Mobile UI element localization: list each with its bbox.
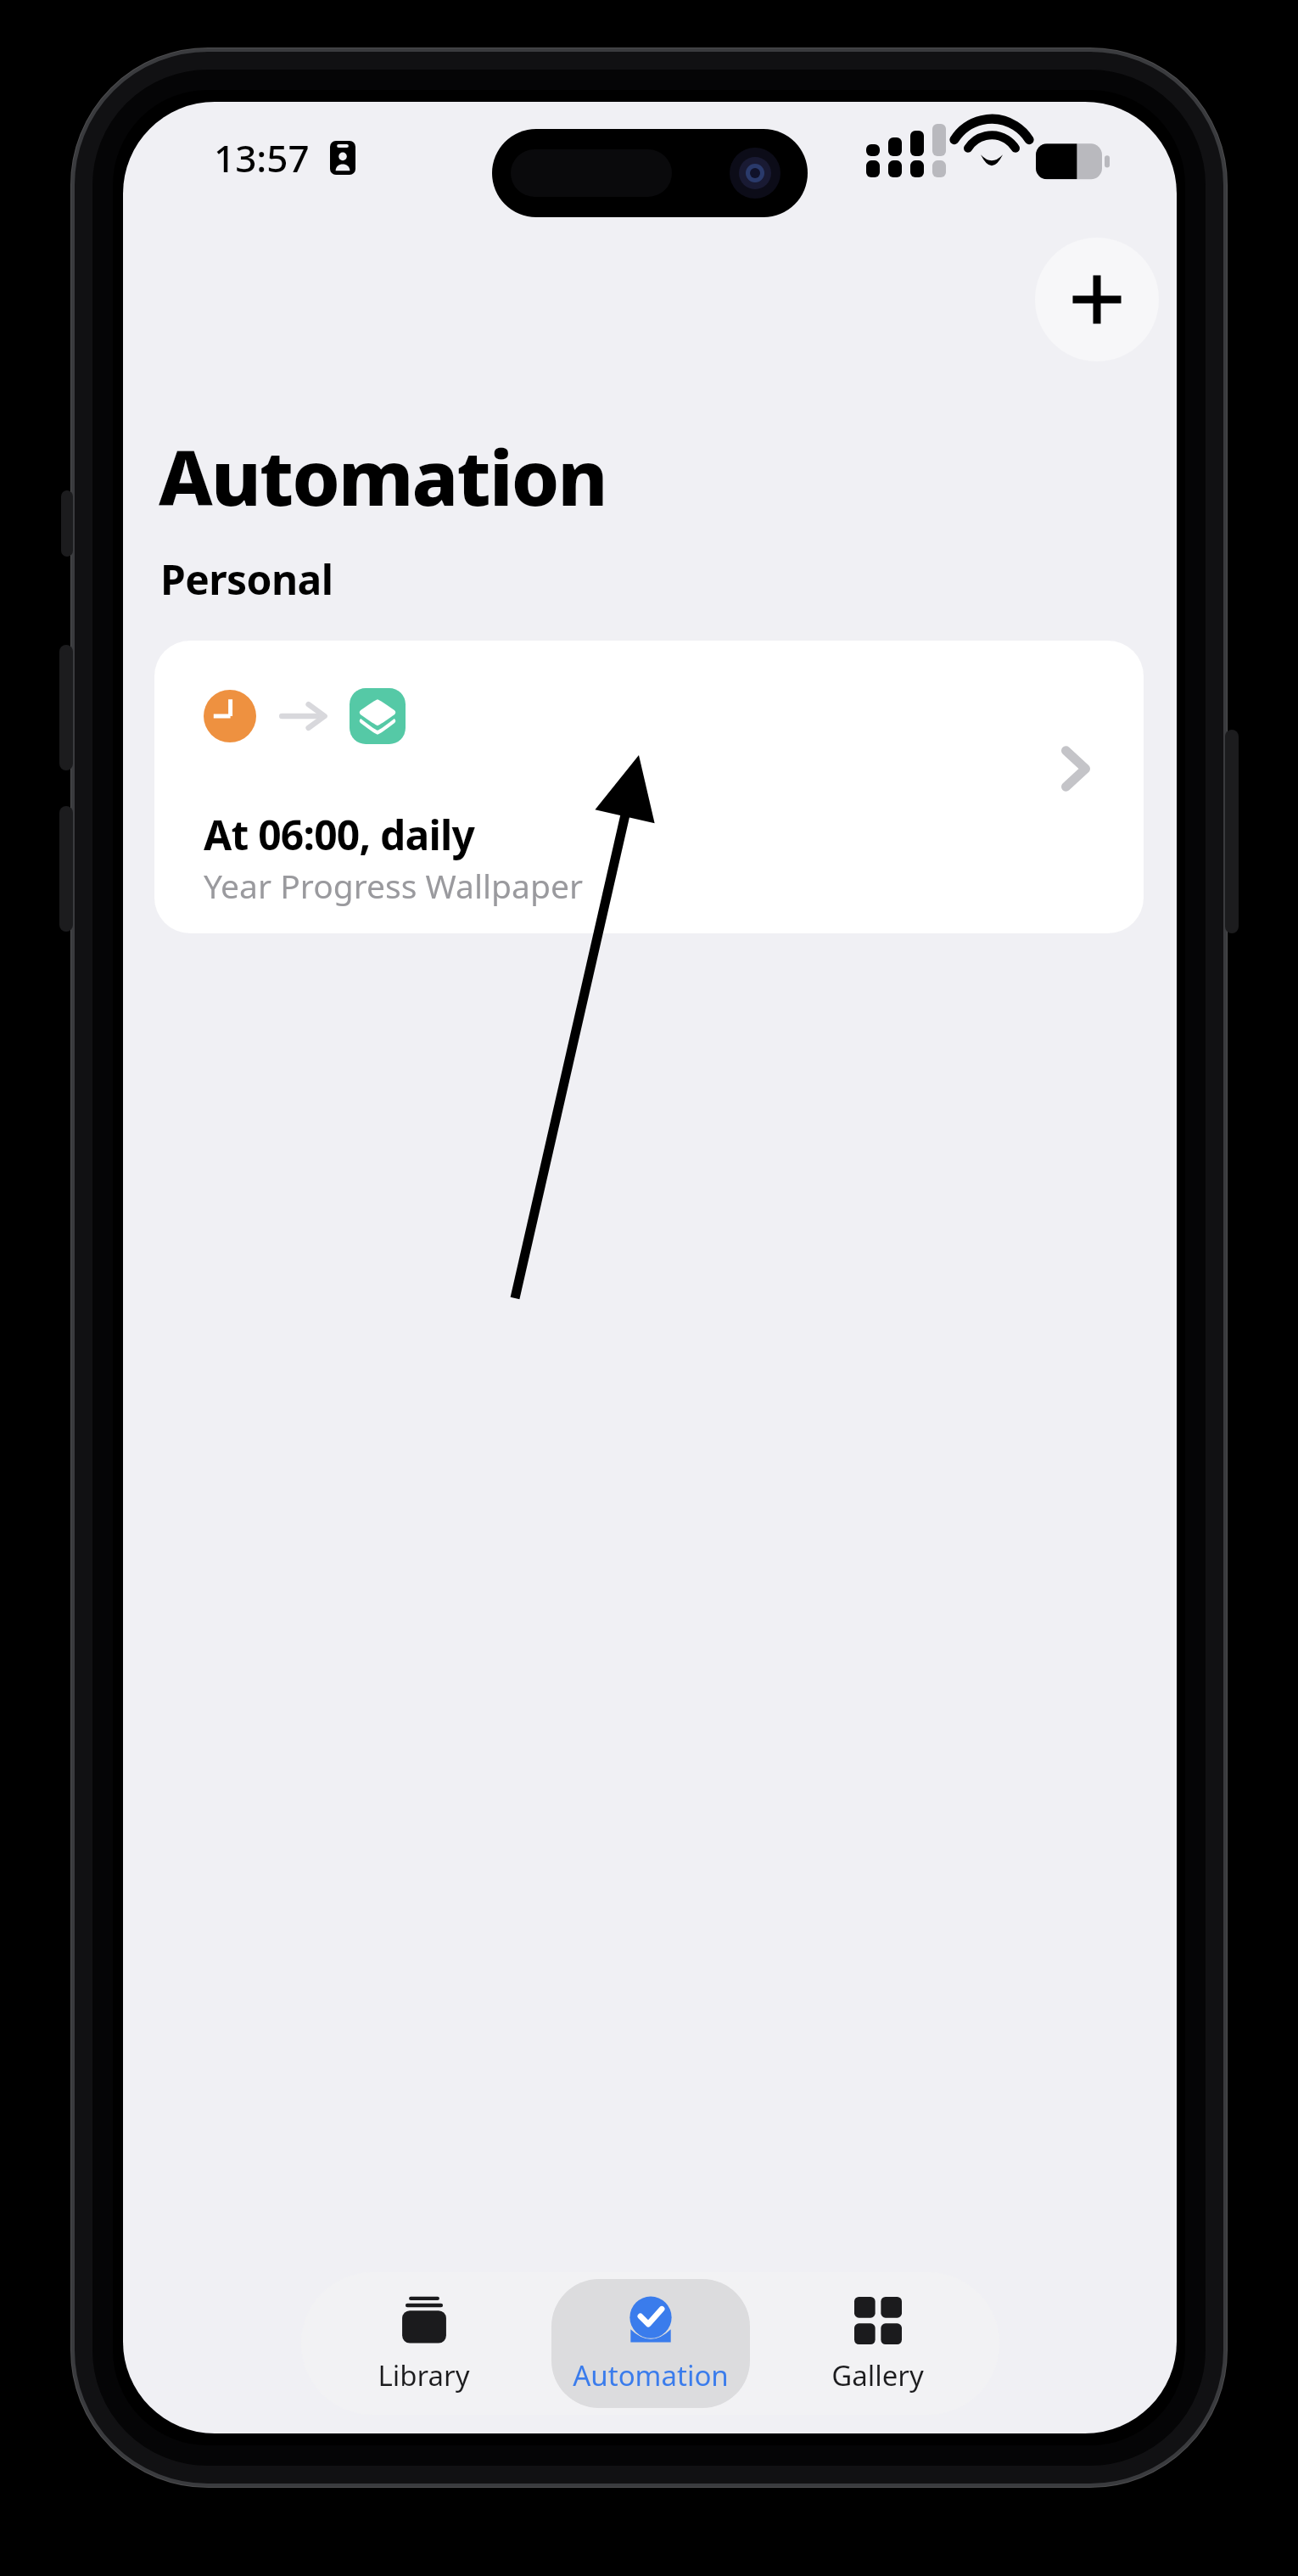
staticText: Automation	[159, 424, 607, 529]
staticText: Gallery	[831, 2356, 924, 2394]
staticText: Automation	[573, 2356, 729, 2394]
button[interactable]: Library	[324, 2279, 523, 2408]
staticText: Year Progress Wallpaper	[204, 863, 584, 908]
staticText: Personal	[160, 552, 333, 607]
button[interactable]: Gallery	[778, 2279, 976, 2408]
staticText: Library	[378, 2356, 470, 2394]
button[interactable]: Add automation	[1035, 238, 1159, 361]
button[interactable]: Automation	[551, 2279, 750, 2408]
staticText: 13:57	[214, 132, 310, 183]
staticText: At 06:00, daily	[204, 807, 475, 862]
button[interactable]: At 06:00, daily	[154, 641, 1144, 933]
